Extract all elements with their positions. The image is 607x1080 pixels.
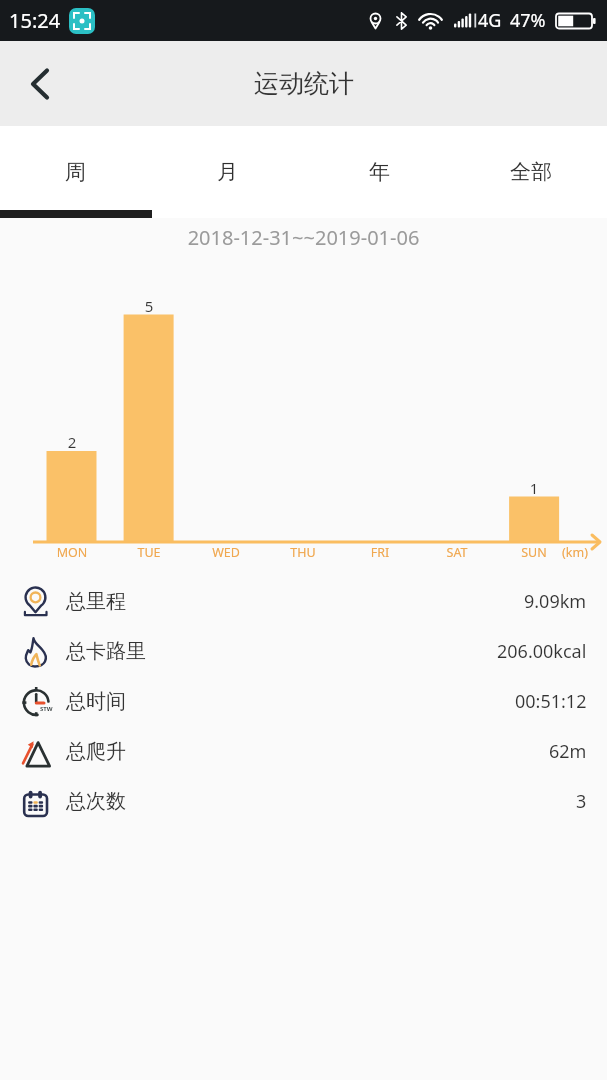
staticText: 总次数 <box>66 789 126 814</box>
button[interactable]: 年 <box>303 126 455 218</box>
button[interactable]: 总里程 <box>0 576 607 626</box>
staticText: 47% <box>510 8 546 33</box>
button[interactable]: 月 <box>151 126 303 218</box>
button[interactable] <box>0 41 84 126</box>
button[interactable]: STW <box>0 676 607 726</box>
staticText: 总里程 <box>66 589 126 614</box>
button[interactable]: 总爬升 <box>0 726 607 776</box>
staticText: 周 <box>65 159 86 185</box>
staticText: 62m <box>549 739 587 764</box>
staticText: 总时间 <box>66 689 126 714</box>
button[interactable]: 总次数 <box>0 776 607 826</box>
staticText: SAT <box>419 544 495 561</box>
staticText: 2 <box>47 432 97 452</box>
staticText: FRI <box>342 544 418 561</box>
staticText: 206.00kcal <box>497 639 587 664</box>
button[interactable]: 全部 <box>455 126 607 218</box>
staticText: 月 <box>217 159 238 185</box>
staticText: 00:51:12 <box>515 689 587 714</box>
button[interactable]: 总卡路里 <box>0 626 607 676</box>
staticText: TUE <box>111 544 187 561</box>
staticText: 5 <box>124 296 174 316</box>
staticText: SUN <box>496 544 572 561</box>
staticText: 运动统计 <box>254 68 354 99</box>
staticText: WED <box>188 544 264 561</box>
staticText: 1 <box>509 478 559 498</box>
staticText: 总爬升 <box>66 739 126 764</box>
staticText: STW <box>40 705 53 713</box>
staticText: 9.09km <box>524 589 587 614</box>
staticText: THU <box>265 544 341 561</box>
staticText: 全部 <box>510 159 552 185</box>
button[interactable]: 周 <box>0 126 151 218</box>
staticText: MON <box>34 544 110 561</box>
staticText: 年 <box>369 159 390 185</box>
staticText: 总卡路里 <box>66 639 146 664</box>
staticText: 2018-12-31~~2019-01-06 <box>0 224 607 251</box>
staticText: 4G <box>478 8 502 33</box>
staticText: 3 <box>576 789 587 814</box>
staticText: 15:24 <box>9 7 61 34</box>
staticText: (km) <box>549 544 601 561</box>
